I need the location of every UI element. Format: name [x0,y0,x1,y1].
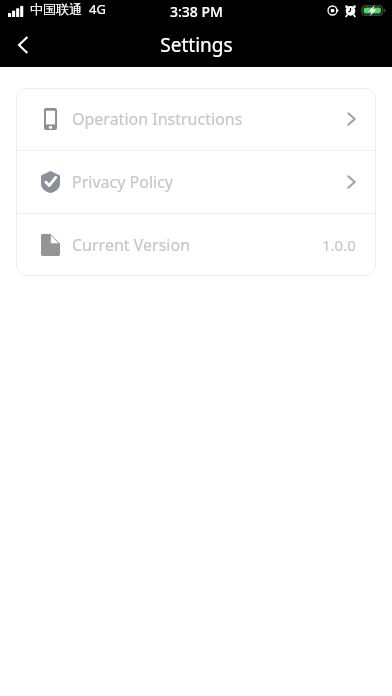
staticText: 1.0.0 [322,235,356,255]
staticText: 4G [89,0,106,18]
button[interactable]: Operation Instructions [16,88,376,150]
button[interactable]: Current Version [16,214,376,276]
staticText: Current Version [72,234,191,256]
staticText: Operation Instructions [72,108,243,130]
staticText: Privacy Policy [72,171,173,193]
button[interactable]: Back [0,22,46,67]
staticText: 3:38 PM [170,2,223,21]
staticText: 中国联通 [30,1,82,17]
staticText: Settings [160,32,233,58]
button[interactable]: Privacy Policy [16,151,376,213]
